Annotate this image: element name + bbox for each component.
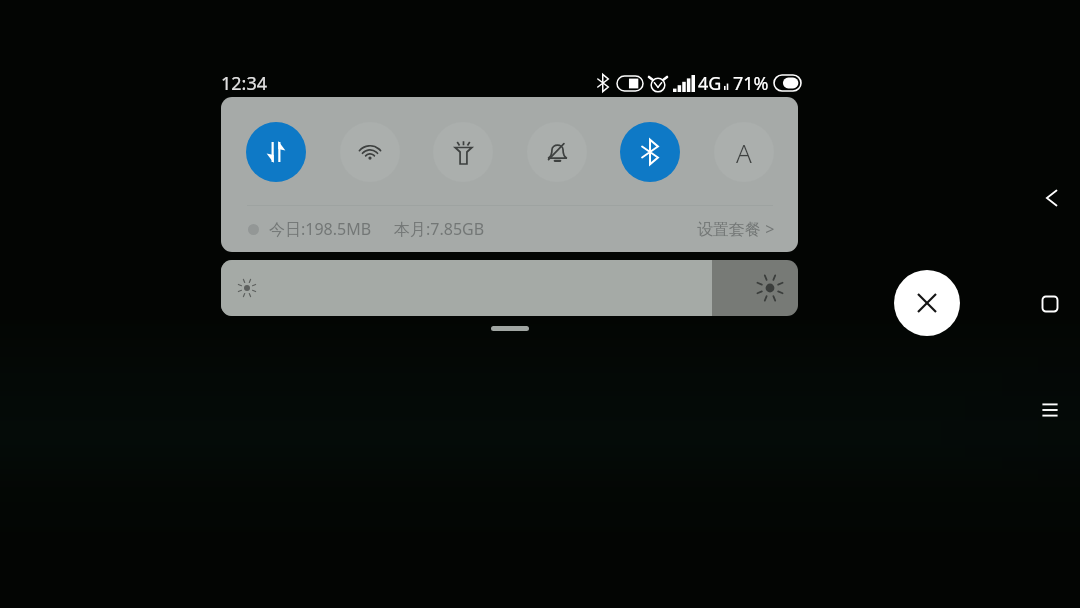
button[interactable]: 今日:198.5MB [221, 206, 798, 252]
button[interactable]: Recents [1028, 388, 1072, 432]
button[interactable]: A [714, 122, 774, 182]
other: Flashlight [454, 140, 473, 165]
staticText: 12:34 [221, 71, 268, 96]
staticText: 本月:7.85GB [394, 218, 485, 240]
other: Silent mode [546, 141, 569, 163]
staticText: 4G [698, 71, 722, 96]
button[interactable]: Home [1028, 282, 1072, 326]
button[interactable]: Flashlight [433, 122, 493, 182]
other: Wi-Fi [356, 142, 384, 162]
button[interactable]: Back [1029, 176, 1073, 220]
staticText: 设置套餐 > [697, 218, 775, 240]
staticText: 71% [733, 71, 769, 96]
button[interactable]: Silent mode [527, 122, 587, 182]
other: Bluetooth [641, 139, 659, 165]
button[interactable]: Bluetooth [620, 122, 680, 182]
other: Mobile data [264, 140, 288, 164]
button[interactable]: Wi-Fi [340, 122, 400, 182]
staticText: 今日:198.5MB [269, 218, 372, 240]
button[interactable]: Mobile data [246, 122, 306, 182]
button[interactable]: Close [894, 270, 960, 336]
button[interactable]: Brightness [221, 260, 798, 316]
staticText: A [736, 135, 752, 170]
